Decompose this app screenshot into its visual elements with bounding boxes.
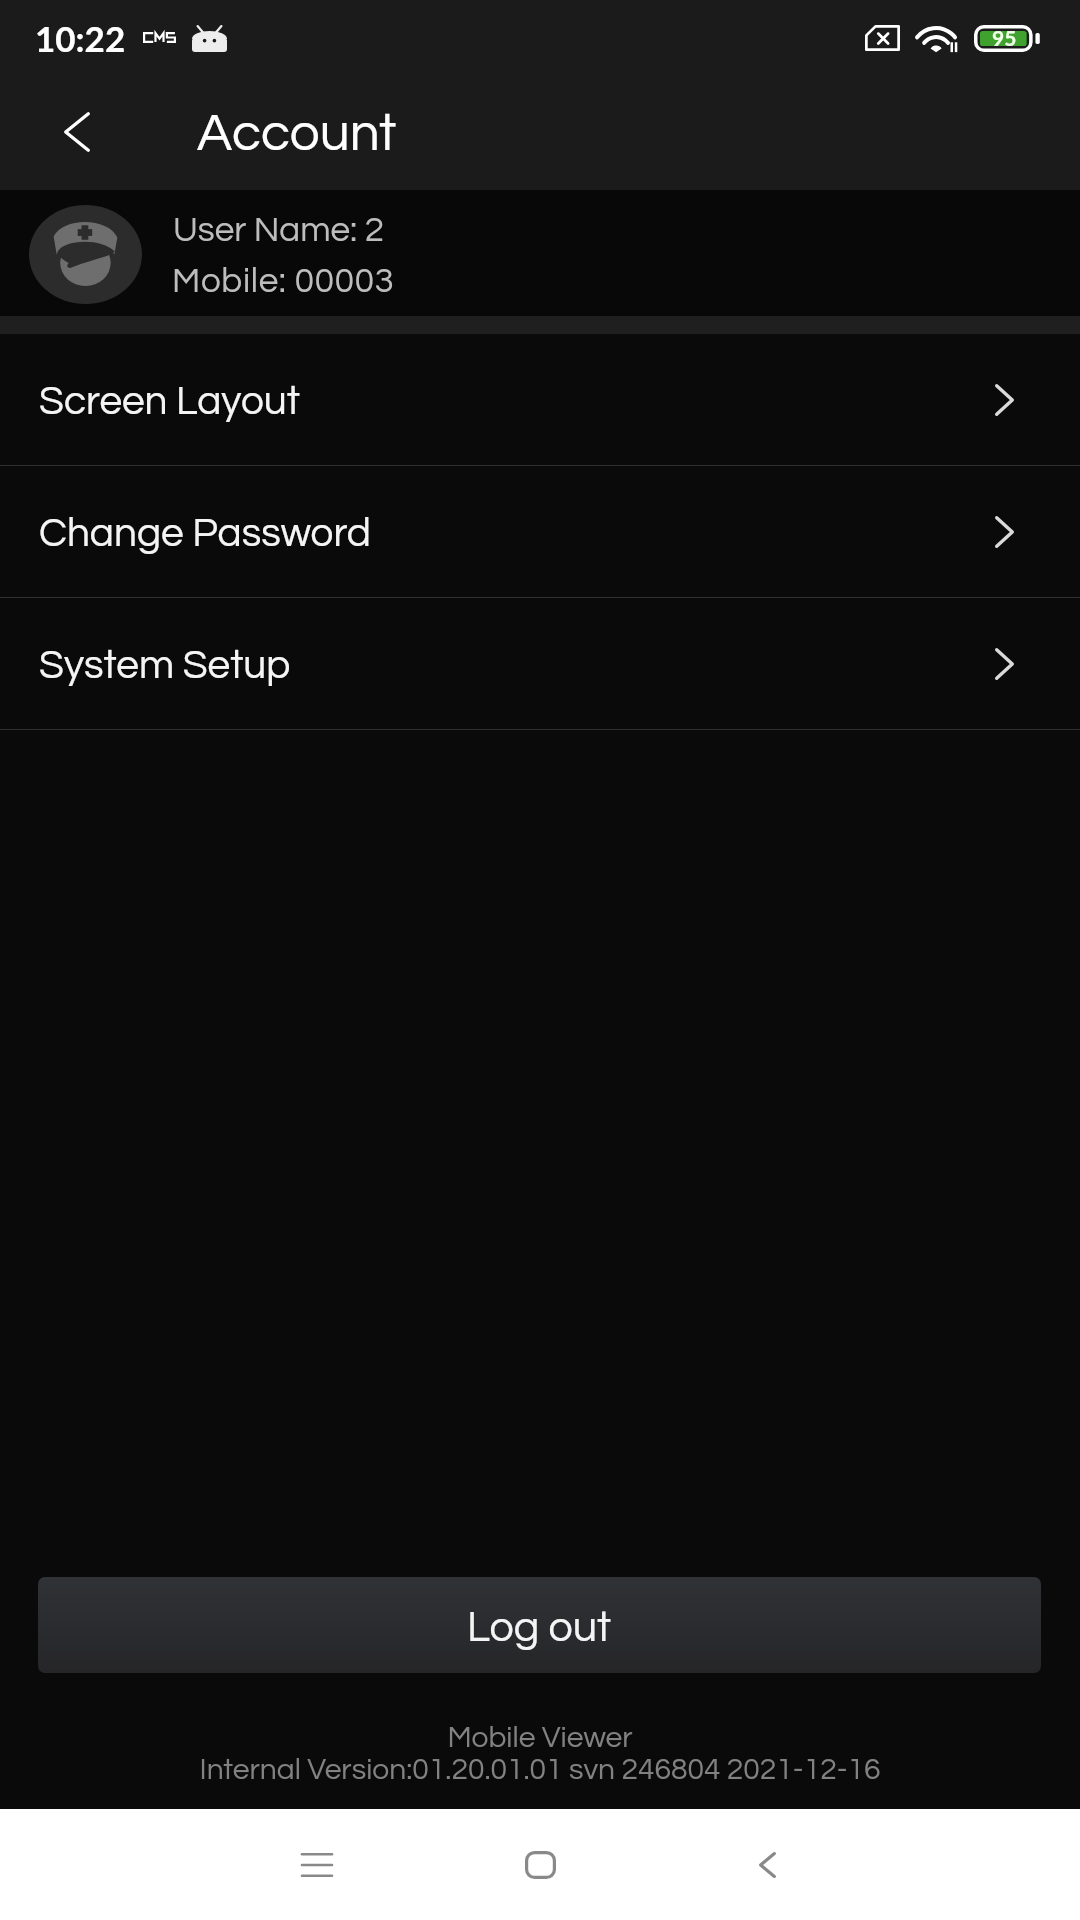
button[interactable]: Screen Layout (0, 334, 1080, 465)
staticText: Log out (467, 1606, 612, 1650)
staticText: System Setup (39, 645, 291, 687)
staticText: Mobile Viewer (0, 1722, 1080, 1753)
staticText: Internal Version:01.20.01.01 svn 246804 … (0, 1754, 1080, 1785)
staticText: User Name: 2 (173, 212, 384, 248)
staticText: Account (197, 107, 397, 162)
staticText: Screen Layout (39, 381, 300, 423)
button[interactable]: Home (440, 1809, 640, 1920)
button[interactable]: Back (667, 1809, 867, 1920)
button[interactable]: Recent apps (217, 1809, 417, 1920)
button[interactable]: Change Password (0, 466, 1080, 597)
button[interactable]: Log out (38, 1577, 1041, 1673)
button[interactable]: System Setup (0, 598, 1080, 729)
staticText: 95 (992, 25, 1017, 50)
button[interactable]: User Name: 2 (0, 190, 1080, 316)
button[interactable]: Back (12, 76, 142, 188)
staticText: Change Password (39, 513, 371, 555)
staticText: 10:22 (35, 17, 126, 59)
staticText: Mobile: 00003 (172, 263, 395, 299)
